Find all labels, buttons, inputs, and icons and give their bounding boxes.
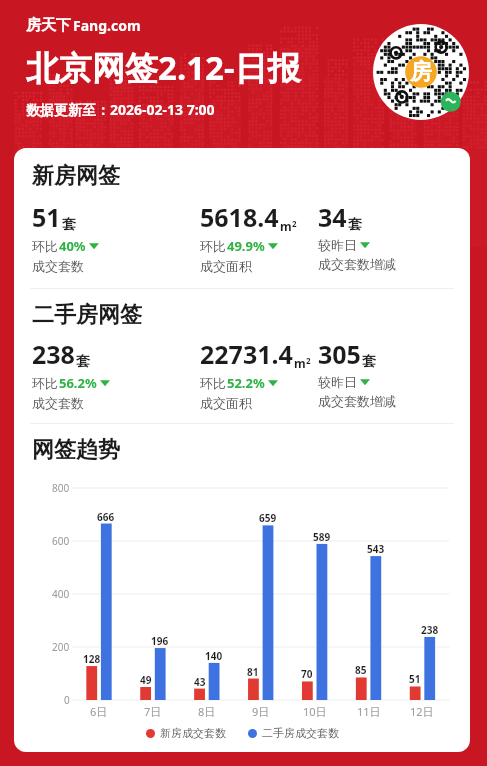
staticText: 11日 [357, 704, 381, 719]
staticText: 较昨日 [318, 237, 357, 253]
staticText: 2 [306, 355, 311, 366]
staticText: 房天下 [26, 16, 71, 35]
staticText: 200 [52, 640, 70, 654]
staticText: 52.2% [227, 374, 265, 392]
staticText: 12日 [410, 704, 434, 719]
staticText: 网签趋势 [32, 436, 120, 464]
staticText: 新房成交套数 [160, 726, 226, 740]
staticText: m [294, 355, 306, 371]
staticText: 800 [52, 481, 70, 495]
staticText: 140 [205, 649, 223, 663]
staticText: 二手房网签 [32, 301, 142, 329]
staticText: 成交面积 [200, 395, 252, 411]
button[interactable]: 22731.4 [200, 337, 318, 411]
staticText: 环比 [32, 375, 58, 391]
button[interactable]: 238 [32, 337, 200, 411]
staticText: 成交套数 [32, 395, 84, 411]
staticText: m [280, 218, 292, 234]
button[interactable]: 5618.4 [200, 200, 318, 274]
staticText: 305 [318, 337, 361, 371]
staticText: 套 [76, 353, 90, 371]
staticText: 666 [97, 510, 115, 524]
button[interactable]: 扫码关注小程序 [373, 24, 469, 120]
staticText: 51 [409, 672, 421, 686]
staticText: 10日 [303, 704, 327, 719]
button[interactable]: 305 [318, 337, 460, 409]
button[interactable]: 34 [318, 200, 460, 272]
staticText: 成交套数增减 [318, 256, 396, 272]
staticText: 成交套数增减 [318, 393, 396, 409]
staticText: 2 [292, 218, 297, 229]
staticText: 543 [367, 542, 385, 556]
staticText: 56.2% [59, 374, 97, 392]
staticText: 49.9% [227, 237, 265, 255]
staticText: 成交面积 [200, 258, 252, 274]
button[interactable]: 51 [32, 200, 200, 274]
staticText: 589 [313, 530, 331, 544]
staticText: 环比 [32, 238, 58, 254]
staticText: 较昨日 [318, 374, 357, 390]
staticText: 9日 [252, 704, 270, 719]
staticText: 二手房成交套数 [262, 726, 339, 740]
staticText: 成交套数 [32, 258, 84, 274]
staticText: 0 [64, 693, 70, 707]
button[interactable]: 二手房成交套数 [248, 726, 339, 740]
staticText: 环比 [200, 375, 226, 391]
staticText: 北京网签2.12-日报 [26, 45, 301, 90]
staticText: 81 [247, 665, 259, 679]
staticText: 房 [410, 58, 432, 86]
staticText: 196 [151, 634, 169, 648]
staticText: 238 [421, 623, 439, 637]
staticText: 7日 [144, 704, 162, 719]
staticText: 49 [140, 673, 152, 687]
staticText: 70 [301, 667, 313, 681]
button[interactable]: 新房成交套数 [146, 726, 226, 740]
staticText: 128 [83, 652, 101, 666]
staticText: 6日 [90, 704, 108, 719]
staticText: 套 [362, 353, 376, 371]
staticText: 环比 [200, 238, 226, 254]
staticText: 400 [52, 587, 70, 601]
staticText: 8日 [198, 704, 216, 719]
staticText: 5618.4 [200, 200, 279, 234]
staticText: 套 [348, 216, 362, 234]
staticText: 套 [62, 216, 76, 234]
staticText: Fang.com [73, 16, 141, 35]
staticText: 51 [32, 200, 61, 234]
staticText: 34 [318, 200, 347, 234]
staticText: 43 [194, 675, 206, 689]
staticText: 新房网签 [32, 162, 120, 190]
staticText: 数据更新至：2026-02-13 7:00 [26, 100, 215, 119]
staticText: 40% [59, 237, 86, 255]
staticText: 85 [355, 663, 367, 677]
staticText: 600 [52, 534, 70, 548]
staticText: 22731.4 [200, 337, 293, 371]
staticText: 659 [259, 511, 277, 525]
staticText: 238 [32, 337, 75, 371]
